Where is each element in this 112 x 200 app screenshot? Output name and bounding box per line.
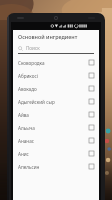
staticText: Айва — [18, 112, 29, 118]
staticText: Основной ингредиент — [18, 33, 78, 40]
button[interactable]: Альычa — [13, 121, 99, 134]
staticText: Альычa — [18, 125, 35, 131]
button[interactable]: Адыгейский сыр — [13, 95, 99, 108]
button[interactable]: Авокадо — [13, 82, 99, 95]
button[interactable]: Абрикосі — [13, 69, 99, 82]
staticText: Апельсин — [18, 164, 40, 170]
other: Search — [18, 46, 23, 51]
staticText: Ананас — [18, 138, 34, 144]
staticText: Абрикосі — [18, 73, 38, 79]
staticText: Поиск — [26, 45, 40, 51]
button[interactable]: Айва — [13, 108, 99, 121]
button[interactable]: Search — [18, 43, 94, 53]
button[interactable]: Анис — [13, 147, 99, 160]
staticText: Адыгейский сыр — [18, 99, 55, 105]
button[interactable]: Апельсин — [13, 160, 99, 173]
button[interactable]: Ананас — [13, 134, 99, 147]
staticText: Анис — [18, 151, 29, 157]
button[interactable]: Сковородка — [13, 56, 99, 69]
staticText: Сковородка — [18, 60, 45, 66]
staticText: Авокадо — [18, 86, 37, 92]
